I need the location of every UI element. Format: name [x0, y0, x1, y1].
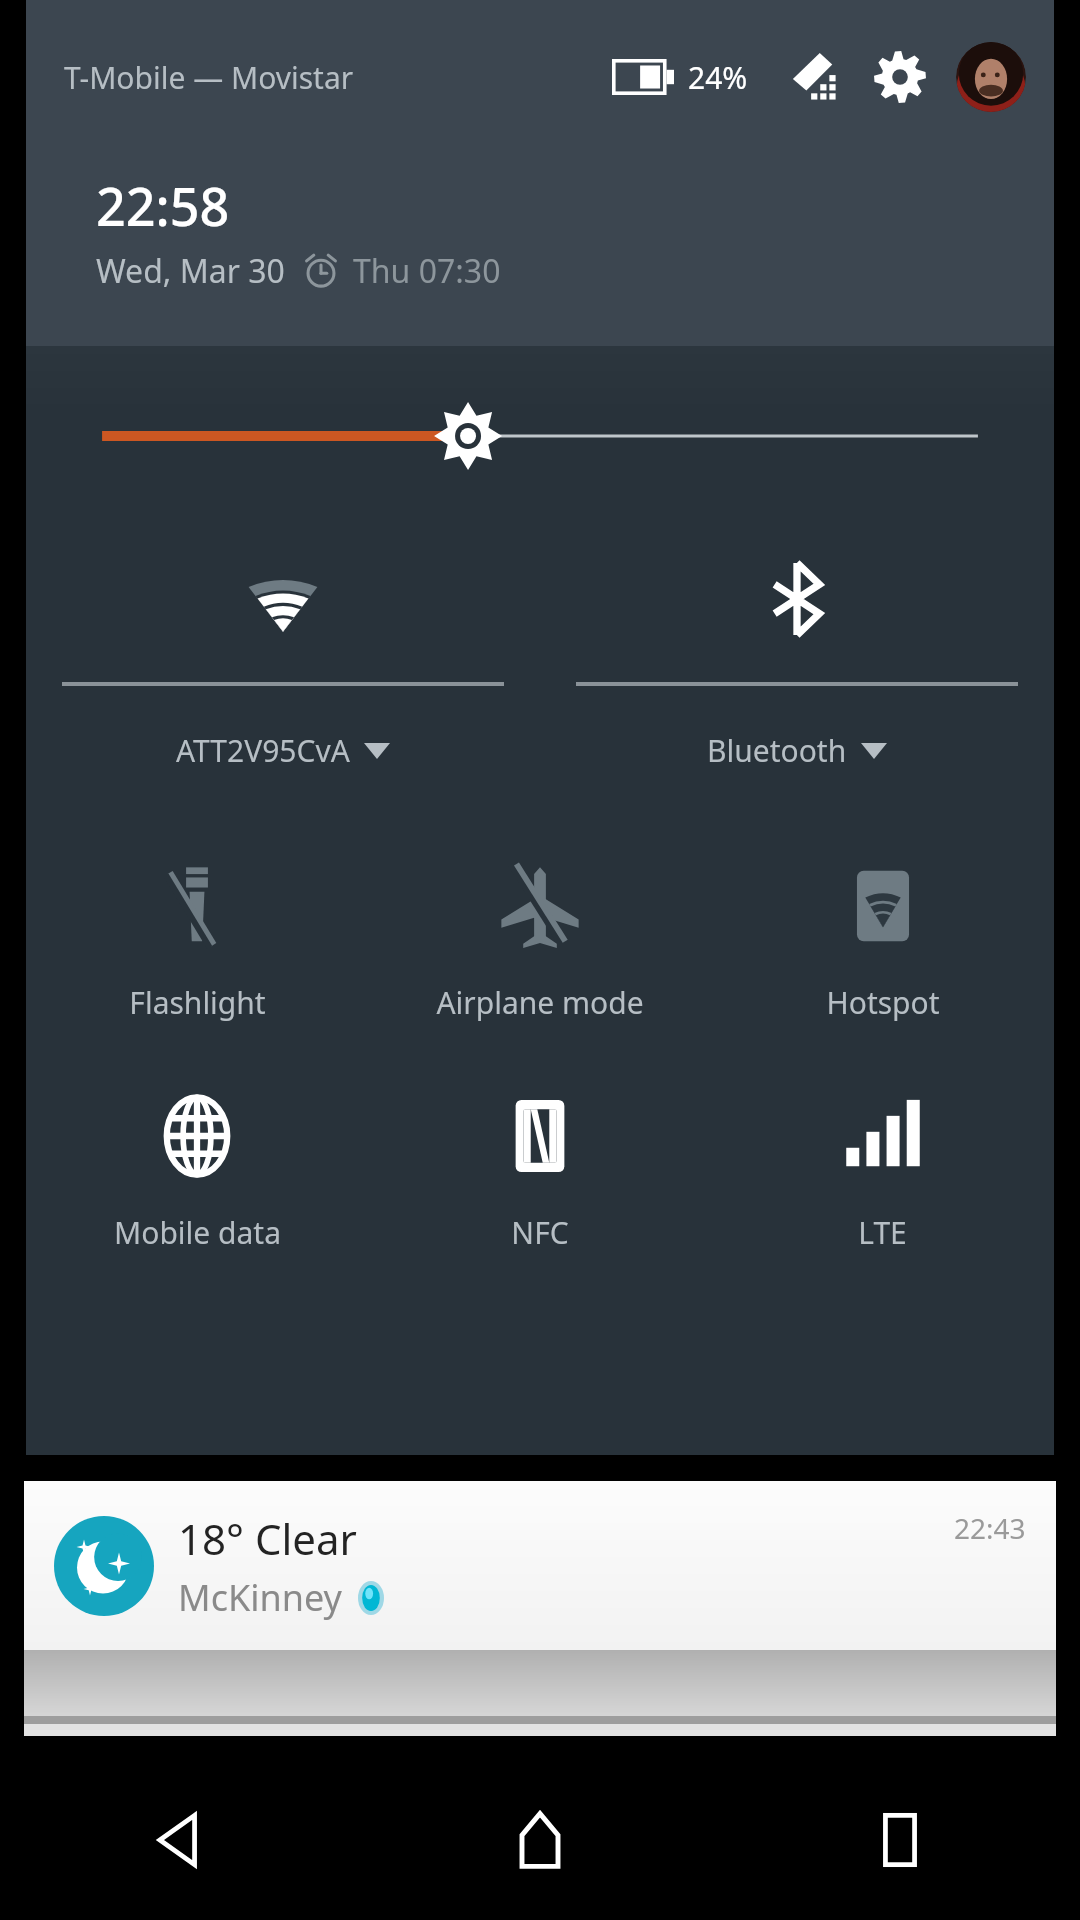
staticText: 18° Clear — [178, 1510, 357, 1567]
staticText: Mobile data — [114, 1212, 281, 1253]
button[interactable]: Airplane mode — [368, 836, 711, 1066]
staticText: Bluetooth — [707, 730, 847, 771]
button[interactable]: Recent apps — [720, 1760, 1080, 1920]
button[interactable]: Home — [360, 1760, 720, 1920]
staticText: Flashlight — [129, 982, 266, 1023]
button[interactable]: Back — [0, 1760, 360, 1920]
button[interactable]: Edit quick settings — [782, 45, 846, 109]
staticText: 24% — [688, 57, 748, 98]
staticText: ATT2V95CvA — [176, 730, 350, 771]
staticText: Thu 07:30 — [353, 249, 501, 293]
button[interactable]: ATT2V95CvA — [26, 526, 540, 836]
staticText: LTE — [858, 1212, 907, 1253]
staticText: McKinney — [178, 1573, 342, 1622]
button[interactable]: Brightness — [26, 346, 1054, 526]
button[interactable]: Bluetooth — [540, 526, 1054, 836]
staticText: NFC — [511, 1212, 569, 1253]
staticText: Hotspot — [826, 982, 940, 1023]
staticText: 22:58 — [96, 170, 230, 241]
staticText: Wed, Mar 30 — [96, 249, 285, 293]
button[interactable]: LTE — [711, 1066, 1054, 1296]
button[interactable]: Flashlight — [26, 836, 368, 1066]
button[interactable]: User profile — [956, 42, 1026, 112]
button[interactable]: Mobile data — [26, 1066, 368, 1296]
button[interactable]: 18° Clear — [24, 1481, 1056, 1650]
button[interactable]: Settings — [868, 45, 932, 109]
staticText: 22:43 — [954, 1509, 1026, 1547]
button[interactable]: NFC — [368, 1066, 711, 1296]
button[interactable]: Hotspot — [711, 836, 1054, 1066]
staticText: T-Mobile — Movistar — [64, 57, 354, 98]
staticText: Airplane mode — [436, 982, 644, 1023]
